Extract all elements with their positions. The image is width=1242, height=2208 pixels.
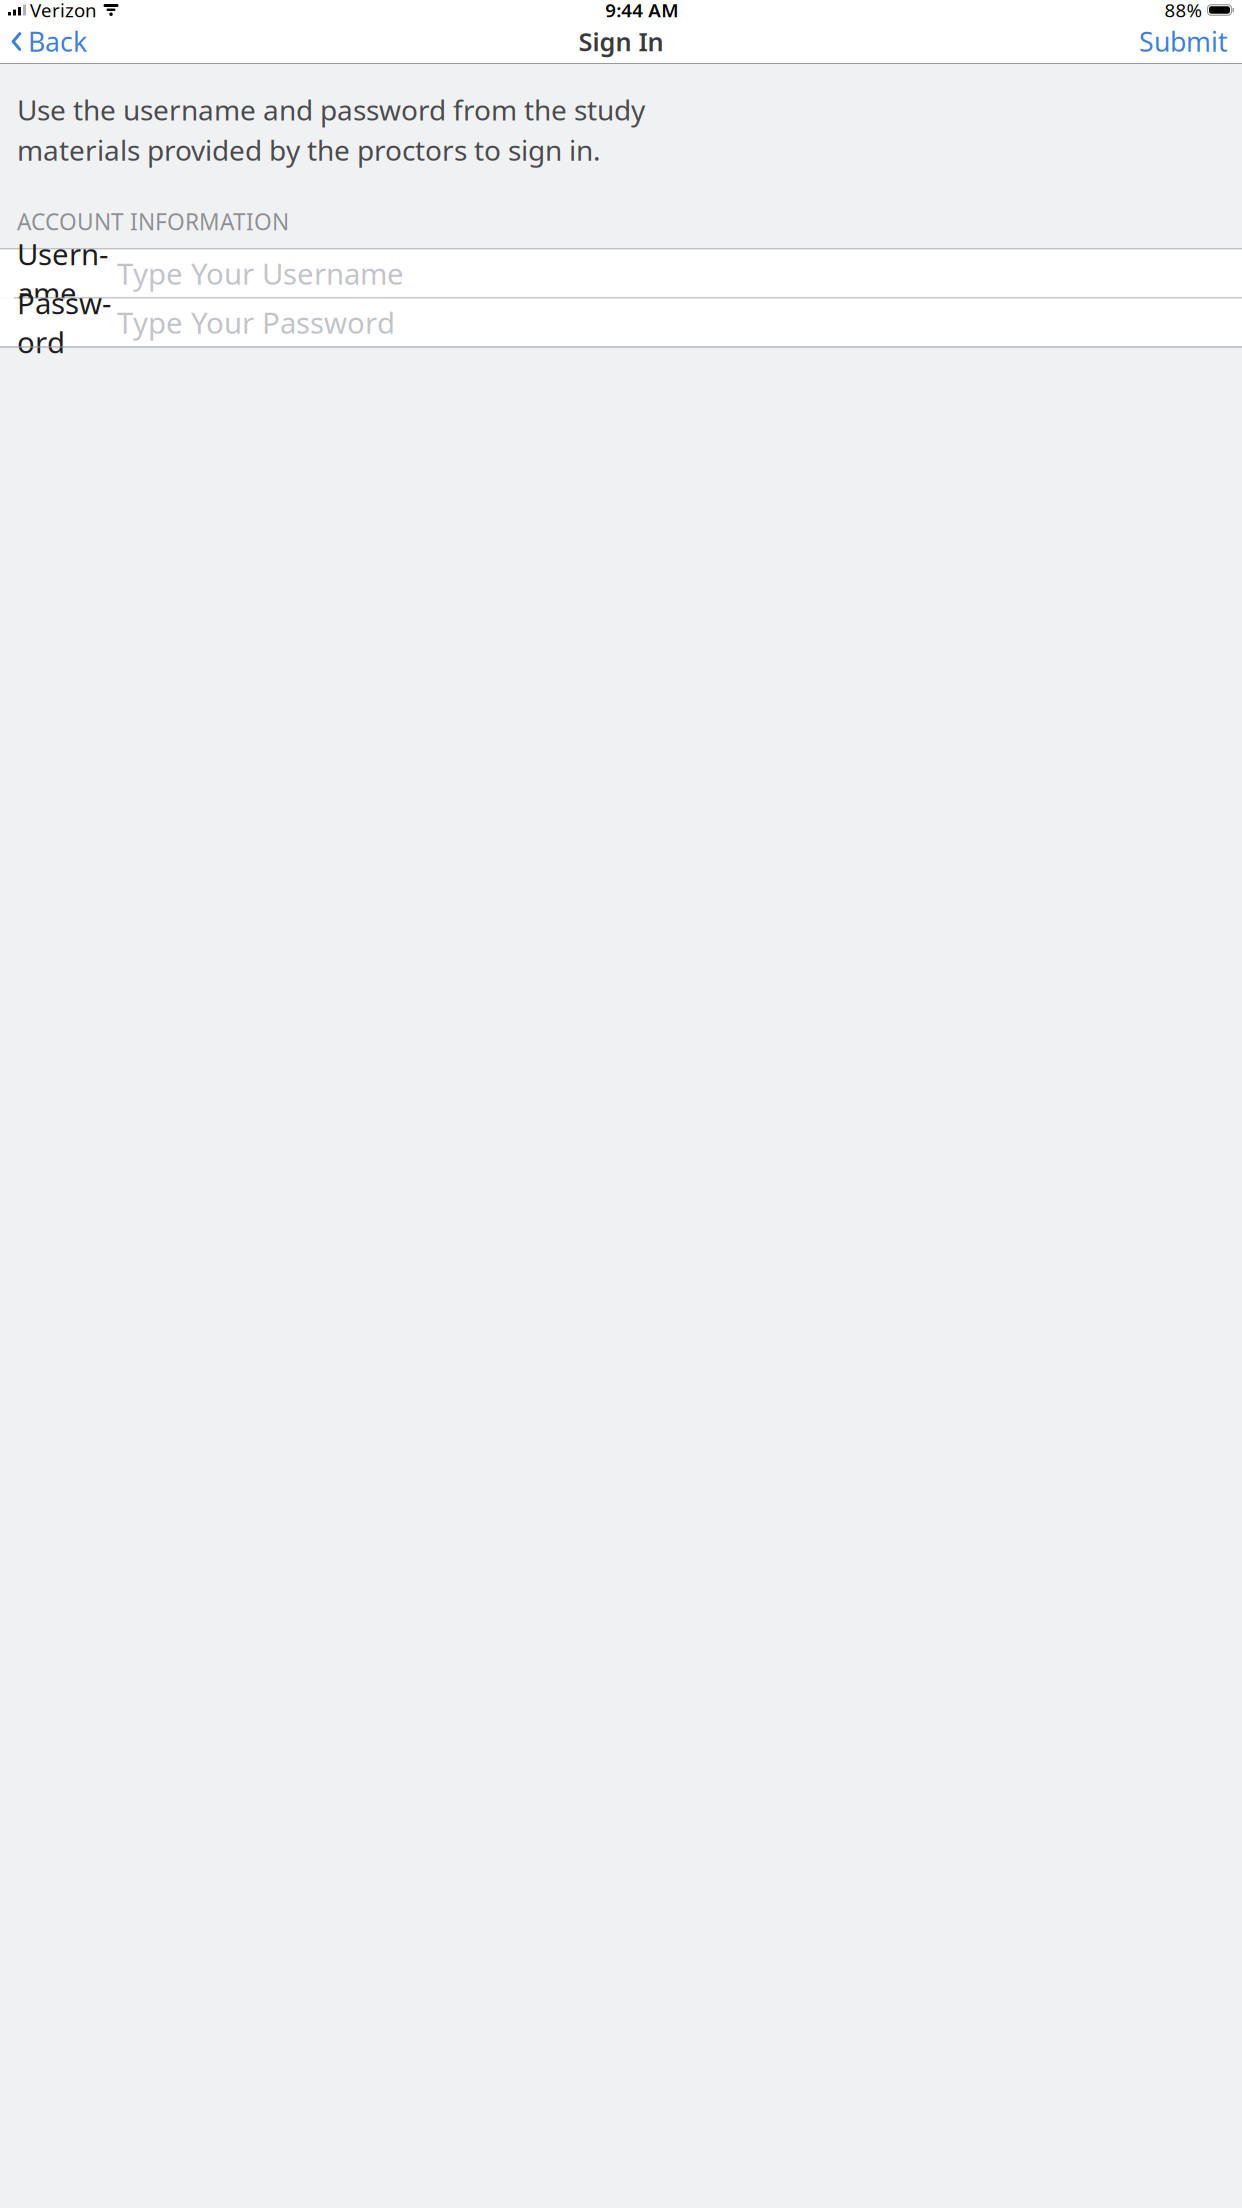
staticText: Username — [17, 234, 108, 312]
staticText: Sign In — [578, 25, 663, 58]
staticText: Use the username and password from the s… — [17, 91, 645, 128]
staticText: 88% — [1164, 0, 1202, 22]
staticText: Submit — [1139, 24, 1228, 59]
button[interactable]: Back — [0, 18, 87, 65]
staticText: 9:44 AM — [605, 0, 678, 22]
button[interactable]: Username — [0, 249, 1242, 297]
button[interactable]: Password — [0, 298, 1242, 346]
staticText: ACCOUNT INFORMATION — [17, 206, 289, 236]
staticText: materials provided by the proctors to si… — [17, 131, 601, 168]
staticText: Type Your Password — [117, 303, 395, 342]
staticText: Back — [28, 24, 87, 59]
staticText: Verizon — [30, 0, 97, 22]
staticText: Type Your Username — [117, 254, 404, 293]
button[interactable]: Submit — [1139, 18, 1242, 65]
staticText: Password — [17, 283, 111, 361]
